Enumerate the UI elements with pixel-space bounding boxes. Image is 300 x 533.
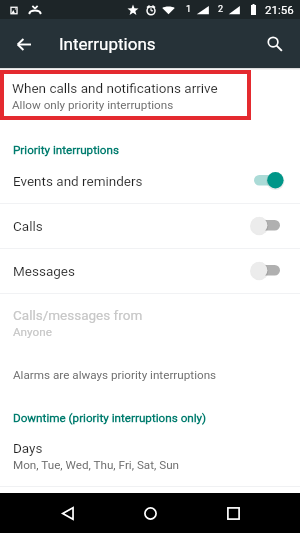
staticText: Interruptions [59, 34, 156, 54]
staticText: Anyone [13, 325, 52, 338]
staticText: Calls/messages from [13, 307, 143, 323]
staticText: Alarms are always priority interruptions [13, 368, 217, 382]
button[interactable]: Home [130, 493, 171, 533]
button[interactable]: Events and reminders [0, 159, 300, 203]
staticText: Priority interruptions [13, 143, 119, 157]
button[interactable]: Days [0, 427, 300, 472]
staticText: Mon, Tue, Wed, Thu, Fri, Sat, Sun [13, 458, 180, 472]
staticText: 21:56 [265, 3, 294, 16]
button[interactable]: Back [47, 493, 88, 533]
staticText: Downtime (priority interruptions only) [13, 411, 207, 425]
staticText: Calls [13, 218, 43, 234]
button[interactable]: Messages [0, 249, 300, 293]
staticText: Allow only priority interruptions [12, 98, 174, 112]
button[interactable]: When calls and notifications arrive [4, 74, 247, 116]
staticText: Days [13, 440, 43, 456]
button[interactable]: Recent apps [213, 493, 254, 533]
staticText: Events and reminders [13, 173, 143, 189]
staticText: When calls and notifications arrive [12, 80, 218, 96]
staticText: Messages [13, 263, 75, 279]
button[interactable]: Search [252, 21, 298, 67]
staticText: 2 [218, 4, 224, 15]
button[interactable]: Navigate up [0, 21, 46, 67]
staticText: 1 [186, 4, 192, 15]
button[interactable]: Calls [0, 204, 300, 248]
